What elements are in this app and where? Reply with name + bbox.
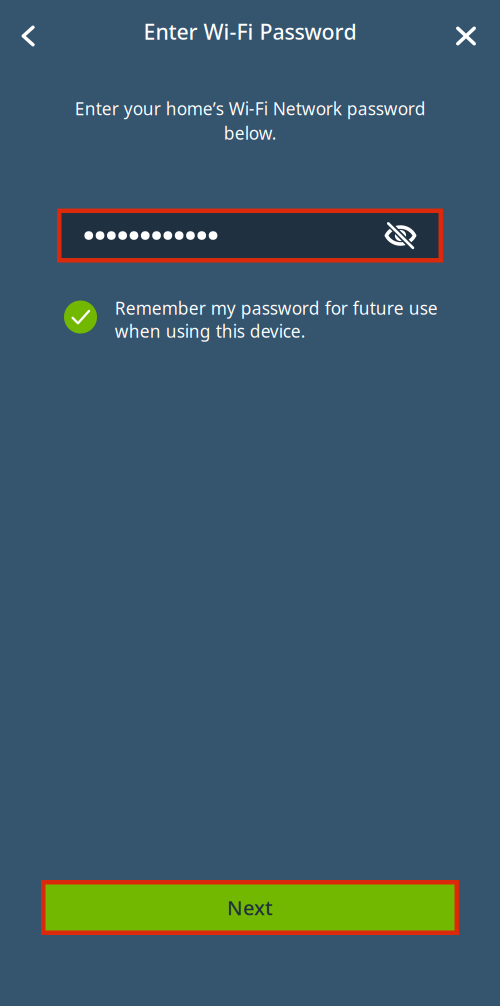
button[interactable]: Next bbox=[41, 880, 459, 935]
button[interactable]: Show password bbox=[373, 213, 438, 258]
staticText: Enter your home’s Wi-Fi Network password… bbox=[74, 97, 425, 144]
button[interactable]: Close bbox=[444, 14, 488, 58]
staticText: Remember my password for future use when… bbox=[115, 296, 438, 342]
staticText: Next bbox=[227, 894, 273, 921]
button[interactable]: Back bbox=[6, 14, 50, 58]
button[interactable]: Remember my password for future use when… bbox=[64, 295, 436, 342]
staticText: Enter Wi-Fi Password bbox=[143, 17, 356, 46]
button[interactable]: Password bbox=[61, 213, 373, 258]
